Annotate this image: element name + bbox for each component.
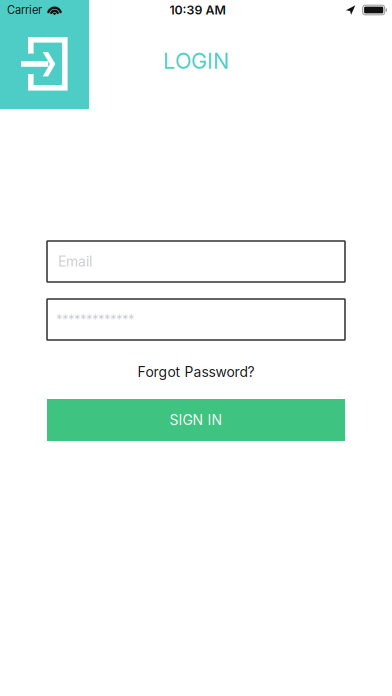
staticText: SIGN IN — [169, 411, 222, 428]
button[interactable]: Forgot Password? — [47, 361, 345, 383]
staticText: 10:39 AM — [169, 2, 225, 17]
staticText: Email — [58, 253, 92, 270]
staticText: LOGIN — [163, 48, 229, 74]
staticText: Carrier — [7, 3, 42, 17]
button[interactable]: SIGN IN — [47, 399, 345, 441]
staticText: ************* — [56, 312, 134, 327]
staticText: Forgot Password? — [137, 364, 254, 380]
